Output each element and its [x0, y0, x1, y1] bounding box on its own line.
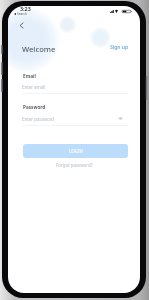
staticText: Email	[23, 73, 36, 79]
staticText: LOGIN	[69, 148, 83, 154]
staticText: Forgot password?	[56, 162, 93, 168]
button[interactable]: Back	[13, 17, 29, 33]
button[interactable]: LOGIN	[23, 144, 128, 158]
staticText: 3:23	[20, 6, 31, 12]
staticText: Enter password	[22, 116, 55, 122]
button[interactable]: Show password	[115, 113, 125, 123]
staticText: Welcome	[22, 44, 56, 54]
staticText: Enter email	[22, 84, 46, 90]
staticText: Sign up	[110, 44, 129, 51]
staticText: Search	[17, 12, 27, 16]
button[interactable]: Sign up	[110, 44, 129, 51]
staticText: Password	[23, 104, 46, 110]
button[interactable]: Forgot password?	[56, 162, 93, 168]
